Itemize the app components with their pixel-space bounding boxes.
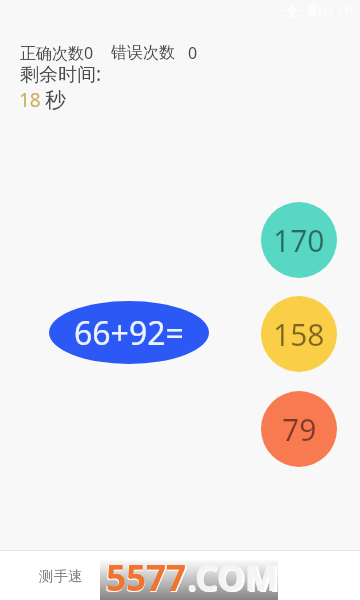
staticText: 正确次数0 [20, 42, 94, 64]
staticText: 错误次数 [111, 43, 175, 63]
staticText: .COM [187, 554, 278, 594]
staticText: 秒 [45, 87, 66, 113]
button[interactable]: 170 [261, 202, 337, 278]
staticText: 5577.COM [105, 554, 281, 594]
staticText: 158 [273, 314, 325, 355]
staticText: 170 [273, 220, 325, 261]
staticText: 18 [19, 87, 41, 113]
button[interactable]: 158 [261, 296, 337, 372]
button[interactable]: 测手速 [31, 563, 91, 589]
staticText: 剩余时间: [20, 61, 102, 87]
staticText: 5577 [106, 554, 187, 594]
staticText: 79 [282, 409, 317, 450]
staticText: 0 [188, 42, 198, 64]
button[interactable]: 66+92= [49, 301, 209, 364]
staticText: 测手速 [39, 567, 83, 585]
button[interactable]: 79 [261, 391, 337, 467]
staticText: 66+92= [74, 311, 184, 355]
